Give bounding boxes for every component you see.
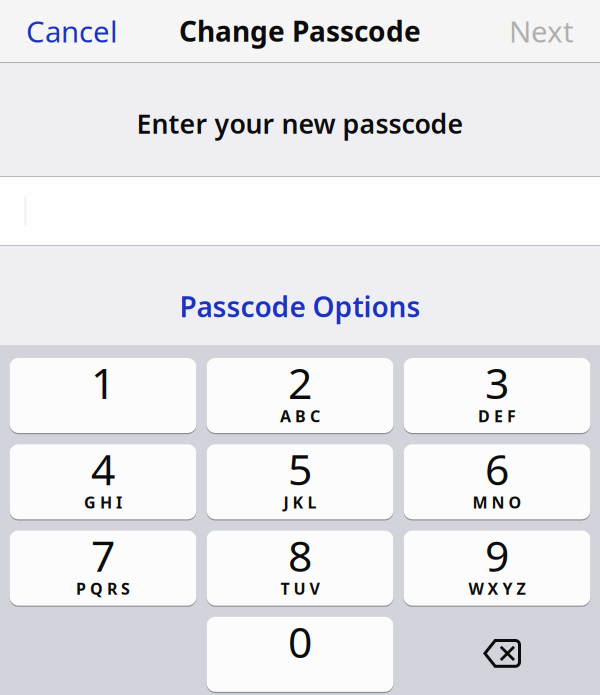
staticText: 4 [91, 440, 115, 497]
staticText: W X Y Z [468, 578, 525, 599]
staticText: Next [509, 11, 574, 50]
staticText: Cancel [26, 11, 118, 50]
button[interactable]: Next [495, 0, 588, 64]
button[interactable]: 7 [9, 531, 196, 606]
staticText: 0 [288, 613, 312, 670]
button[interactable]: Passcode Options [161, 278, 438, 335]
staticText: 2 [288, 354, 312, 411]
button[interactable]: 0 [206, 617, 393, 692]
button[interactable]: Delete [403, 617, 590, 692]
button[interactable]: Cancel [12, 0, 132, 64]
button[interactable]: 9 [403, 531, 590, 606]
button[interactable]: 5 [206, 444, 393, 519]
staticText: Passcode Options [179, 288, 420, 325]
staticText: 9 [485, 527, 509, 583]
staticText: 6 [485, 440, 509, 497]
staticText: P Q R S [76, 578, 130, 599]
staticText: 5 [288, 440, 312, 497]
staticText: 8 [288, 527, 312, 583]
staticText: D E F [478, 405, 516, 427]
staticText: 7 [91, 527, 115, 583]
staticText: J K L [283, 492, 316, 513]
staticText: Enter your new passcode [136, 106, 463, 141]
button[interactable]: 6 [403, 444, 590, 519]
staticText: M N O [472, 492, 521, 513]
staticText: 3 [485, 354, 509, 411]
button[interactable]: 2 [206, 358, 393, 433]
button[interactable]: 3 [403, 358, 590, 433]
button[interactable]: 8 [206, 531, 393, 606]
staticText: Change Passcode [179, 12, 421, 50]
staticText: 1 [91, 354, 115, 411]
staticText: A B C [280, 405, 320, 427]
staticText: G H I [84, 492, 122, 513]
button[interactable]: 4 [9, 444, 196, 519]
button[interactable]: 1 [9, 358, 196, 433]
staticText: T U V [280, 578, 319, 599]
